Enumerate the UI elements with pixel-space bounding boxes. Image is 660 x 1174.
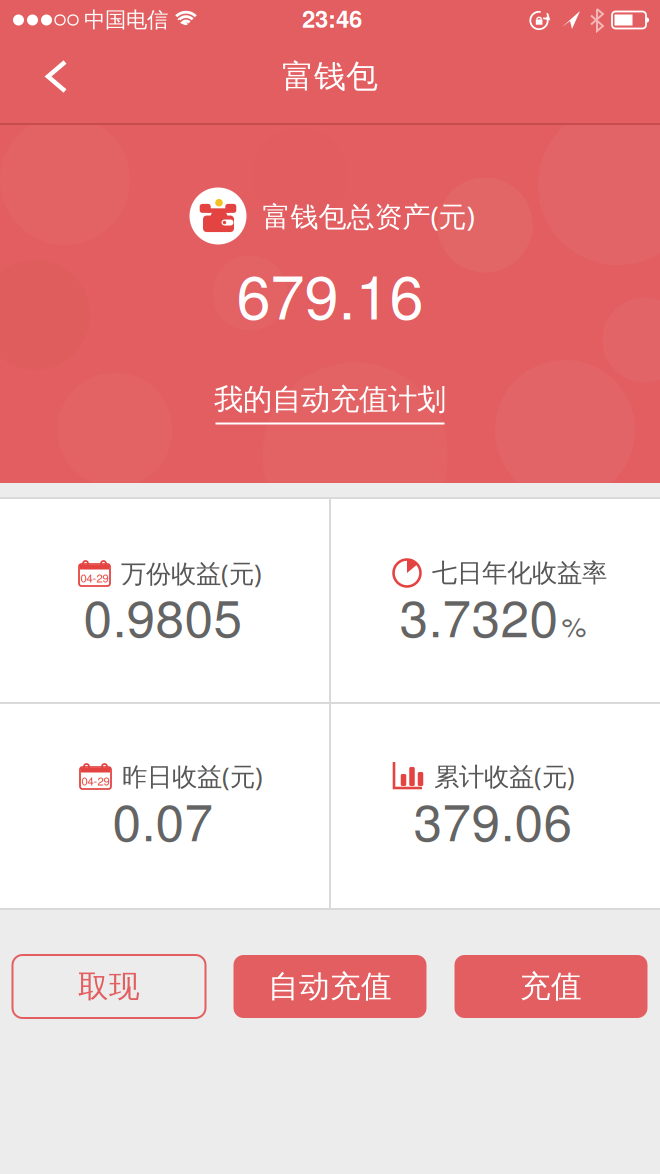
button[interactable]: 充值 [454, 955, 647, 1018]
button[interactable]: Back [0, 40, 90, 113]
staticText: 累计收益(元) [434, 759, 575, 793]
staticText: 3.7320 [399, 578, 558, 652]
staticText: 0.9805 [83, 578, 242, 652]
staticText: 七日年化收益率 [432, 557, 607, 588]
staticText: 富钱包 [282, 57, 378, 96]
button[interactable]: 取现 [12, 955, 205, 1018]
staticText: 379.06 [413, 782, 572, 856]
button[interactable]: 自动充值 [233, 955, 426, 1018]
staticText: 679.16 [236, 249, 423, 337]
staticText: 我的自动充值计划 [214, 381, 446, 417]
staticText: % [561, 605, 586, 645]
staticText: 自动充值 [268, 968, 392, 1005]
staticText: 充值 [520, 968, 582, 1005]
staticText: 04-29 [80, 569, 108, 586]
staticText: 23:46 [302, 1, 362, 35]
staticText: 中国电信 [84, 7, 168, 33]
staticText: 取现 [78, 968, 140, 1005]
staticText: 04-29 [81, 772, 109, 789]
staticText: 富钱包总资产(元) [262, 197, 474, 235]
staticText: 0.07 [112, 782, 213, 856]
staticText: 昨日收益(元) [122, 759, 263, 793]
staticText: 万份收益(元) [121, 556, 262, 590]
button[interactable]: 我的自动充值计划 [214, 381, 446, 424]
